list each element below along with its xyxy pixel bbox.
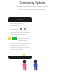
button[interactable] <box>8 17 32 59</box>
staticText: See what neighbours are sharing today <box>16 5 48 7</box>
staticText: Tap a post to join the conversation <box>18 8 46 10</box>
staticText: Community Updates <box>19 1 46 4</box>
